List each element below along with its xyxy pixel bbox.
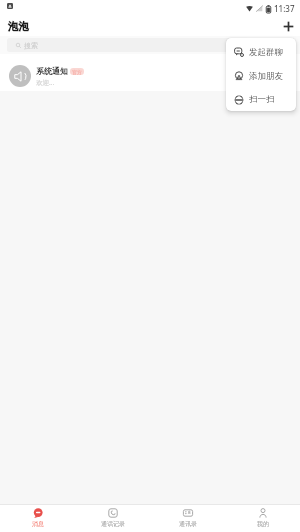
button[interactable]: 添加朋友 — [226, 64, 296, 88]
button[interactable]: 消息 — [0, 505, 75, 532]
button[interactable]: 搜索 — [7, 38, 293, 52]
button[interactable]: 扫一扫 — [226, 88, 296, 111]
staticText: 扫一扫 — [249, 94, 275, 105]
staticText: 通讯录 — [179, 520, 197, 528]
staticText: 消息 — [32, 520, 44, 528]
button[interactable]: 系统通知 — [0, 54, 300, 91]
staticText: 发起群聊 — [249, 47, 283, 58]
staticText: 泡泡 — [8, 20, 29, 33]
button[interactable]: Add — [276, 16, 300, 36]
staticText: 通话记录 — [101, 520, 125, 528]
staticText: 添加朋友 — [249, 71, 283, 82]
button[interactable]: 通讯录 — [150, 505, 225, 532]
staticText: 官方 — [72, 69, 82, 75]
staticText: 搜索 — [24, 41, 38, 50]
button[interactable]: 通话记录 — [75, 505, 150, 532]
button[interactable]: 发起群聊 — [226, 40, 296, 64]
staticText: 欢迎... — [36, 78, 55, 87]
staticText: 11:37 — [274, 3, 295, 14]
staticText: 我的 — [257, 520, 269, 528]
staticText: 系统通知 — [36, 66, 68, 76]
button[interactable]: 我的 — [225, 505, 300, 532]
